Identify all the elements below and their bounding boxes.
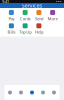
button[interactable]: Help xyxy=(32,23,46,35)
button[interactable]: Home xyxy=(4,85,15,100)
button[interactable]: Cards xyxy=(18,10,32,21)
staticText: ••• xyxy=(56,0,62,4)
staticText: Services xyxy=(21,2,42,9)
button[interactable]: Send xyxy=(32,10,46,21)
staticText: More xyxy=(48,16,58,21)
button[interactable]: More xyxy=(46,10,60,21)
staticText: Help xyxy=(35,29,43,35)
staticText: 9:41 xyxy=(2,0,9,4)
staticText: Cards xyxy=(20,16,31,21)
button[interactable]: Bills xyxy=(4,23,18,35)
button[interactable]: Discover xyxy=(15,85,26,100)
staticText: Top Up xyxy=(19,29,31,35)
button[interactable]: Messages xyxy=(37,85,48,100)
button[interactable]: Top Up xyxy=(18,23,32,35)
button[interactable]: Pay xyxy=(4,10,18,21)
button[interactable]: Me xyxy=(48,85,59,100)
button[interactable]: Services xyxy=(26,85,37,100)
staticText: Bills xyxy=(7,29,15,35)
staticText: Send xyxy=(35,16,43,21)
staticText: Pay xyxy=(8,16,14,21)
